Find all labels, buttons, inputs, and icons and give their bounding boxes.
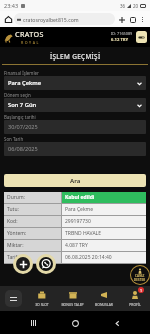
staticText: 299197730 [65,218,91,225]
button[interactable]: cratosroyalbet815.com [14,13,115,25]
button[interactable]: Home [3,14,13,24]
staticText: BONUSLAR [95,302,113,307]
staticText: ID: 7165089 [111,31,133,36]
button[interactable]: 1 [119,286,150,311]
staticText: BONUS TALEP [61,302,84,307]
staticText: R O Y A L [21,40,39,45]
staticText: CRATOS [15,29,44,39]
staticText: Durum: [7,194,25,201]
button[interactable]: Home [66,314,84,332]
staticText: PROFİL [129,302,141,307]
staticText: Tutu: [7,206,19,213]
staticText: Yöntem: [7,230,27,237]
staticText: Başlangıç tarihi [4,114,36,120]
button[interactable]: Recents [24,314,42,332]
staticText: 36 [120,3,126,9]
button[interactable]: Para Çekme [4,76,146,90]
button[interactable]: Durum: [4,192,146,204]
button[interactable]: Canlı Destek [131,266,149,284]
button[interactable]: Menu [0,286,26,311]
button[interactable]: 06/08/2025 [4,142,146,156]
button[interactable]: 30/07/2025 [4,120,146,134]
staticText: CANLI [135,274,145,278]
button[interactable]: 3D SLOT [26,286,57,311]
button[interactable]: Kod: [4,216,146,228]
button[interactable]: Tabs [128,15,137,24]
staticText: 23:43 [4,2,19,9]
staticText: Son 7 Gün [8,101,37,109]
staticText: 1 [140,288,143,293]
staticText: Dönem seçin [4,92,31,98]
button[interactable]: Tarif: [4,252,146,264]
button[interactable]: WhatsApp [39,257,53,271]
staticText: 06/08/2025 [8,145,38,153]
staticText: İŞLEM GEÇMİŞİ [50,52,101,61]
button[interactable]: More options [138,15,147,24]
staticText: cratosroyalbet815.com [23,16,79,23]
staticText: Finansal İşlemler [4,70,39,76]
button[interactable]: Add [16,257,30,271]
staticText: 6.12 TRY [111,37,129,43]
staticText: 4.087 TRY [65,242,88,249]
button[interactable]: Tutu: [4,204,146,216]
staticText: Son Tarih [4,136,24,142]
button[interactable]: Ara [4,174,146,187]
staticText: Kod: [7,218,18,225]
staticText: Para Çekme [8,79,42,87]
staticText: Ara [70,177,81,185]
button[interactable]: Son 7 Gün [4,98,146,112]
button[interactable]: New tab [117,15,126,24]
staticText: Tarif: [7,254,19,261]
button[interactable]: Back [108,314,126,332]
button[interactable]: ID: 7165089 [111,31,133,43]
button[interactable]: Miktar: [4,240,146,252]
staticText: DESTEK [134,278,146,282]
staticText: Para Çekme [65,206,94,213]
button[interactable]: BONUSLAR [88,286,119,311]
button[interactable]: Wallet [136,31,147,43]
button[interactable]: CRATOS [3,29,44,45]
staticText: 30/07/2025 [8,123,38,131]
staticText: 3D SLOT [35,302,49,307]
staticText: 06.08.2025 20:14:40 [65,254,112,261]
button[interactable]: BONUS TALEP [57,286,88,311]
staticText: TRBND HAVALE [65,230,101,237]
staticText: Miktar: [7,242,24,249]
button[interactable]: Yöntem: [4,228,146,240]
staticText: 20 [133,3,139,9]
staticText: Kabul edildi [65,194,95,201]
